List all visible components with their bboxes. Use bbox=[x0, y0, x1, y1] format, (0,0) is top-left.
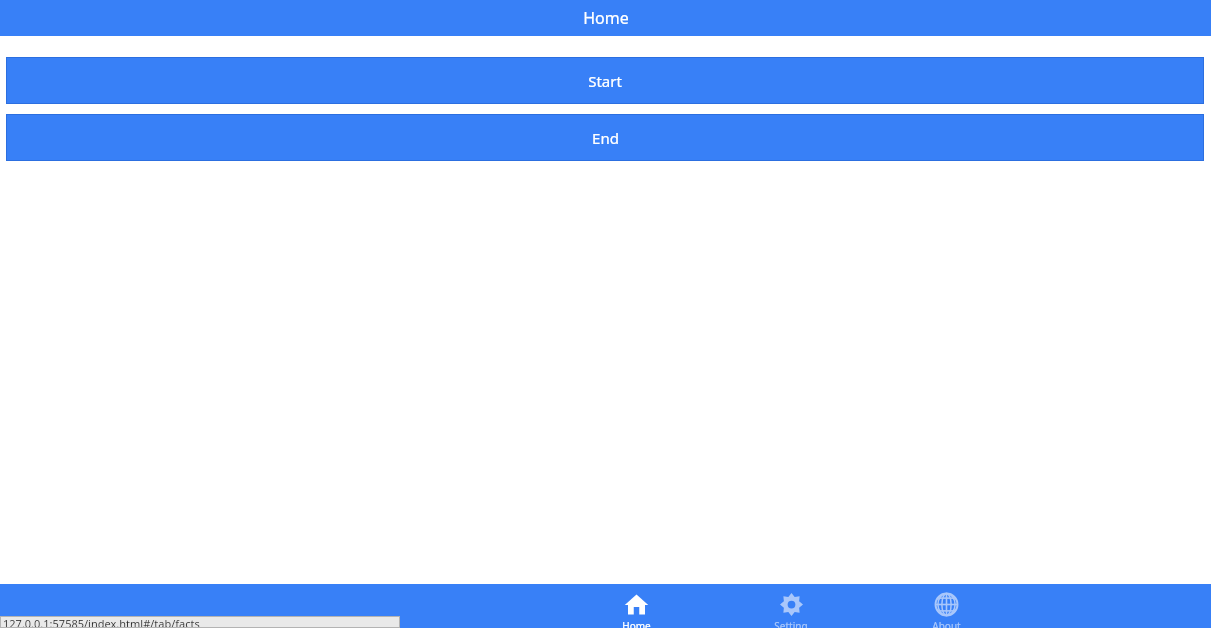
staticText: Home bbox=[583, 7, 629, 29]
button[interactable]: Start bbox=[6, 57, 1204, 104]
staticText: Home bbox=[622, 619, 651, 628]
staticText: Start bbox=[588, 71, 622, 91]
staticText: About bbox=[932, 619, 961, 628]
button[interactable]: About bbox=[918, 584, 974, 628]
button[interactable]: Setting bbox=[763, 584, 819, 628]
staticText: 127.0.0.1:57585/index.html#/tab/facts bbox=[3, 616, 200, 628]
staticText: End bbox=[592, 128, 619, 148]
button[interactable]: Home bbox=[608, 584, 664, 628]
staticText: Setting bbox=[774, 619, 808, 628]
button[interactable]: End bbox=[6, 114, 1204, 161]
